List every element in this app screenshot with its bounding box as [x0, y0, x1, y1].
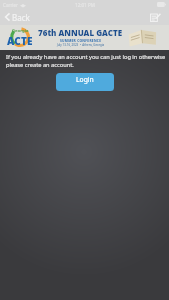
- staticText: July 13-16, 2023 • Athens, Georgia: [57, 43, 105, 47]
- staticText: ACTE: [7, 34, 33, 48]
- staticText: Login: [76, 75, 94, 84]
- button[interactable]: Back: [0, 9, 35, 25]
- staticText: 12:01 PM: [75, 2, 95, 8]
- staticText: Carrier: [3, 2, 18, 8]
- button[interactable]: Register: [150, 13, 161, 22]
- staticText: SUMMER CONFERENCE: [60, 38, 102, 42]
- button[interactable]: Login: [56, 73, 114, 91]
- staticText: Georgia: [12, 28, 29, 34]
- staticText: Back: [12, 12, 30, 22]
- staticText: 76th ANNUAL GACTE: [38, 27, 123, 38]
- staticText: If you already have an account you can j…: [6, 53, 168, 69]
